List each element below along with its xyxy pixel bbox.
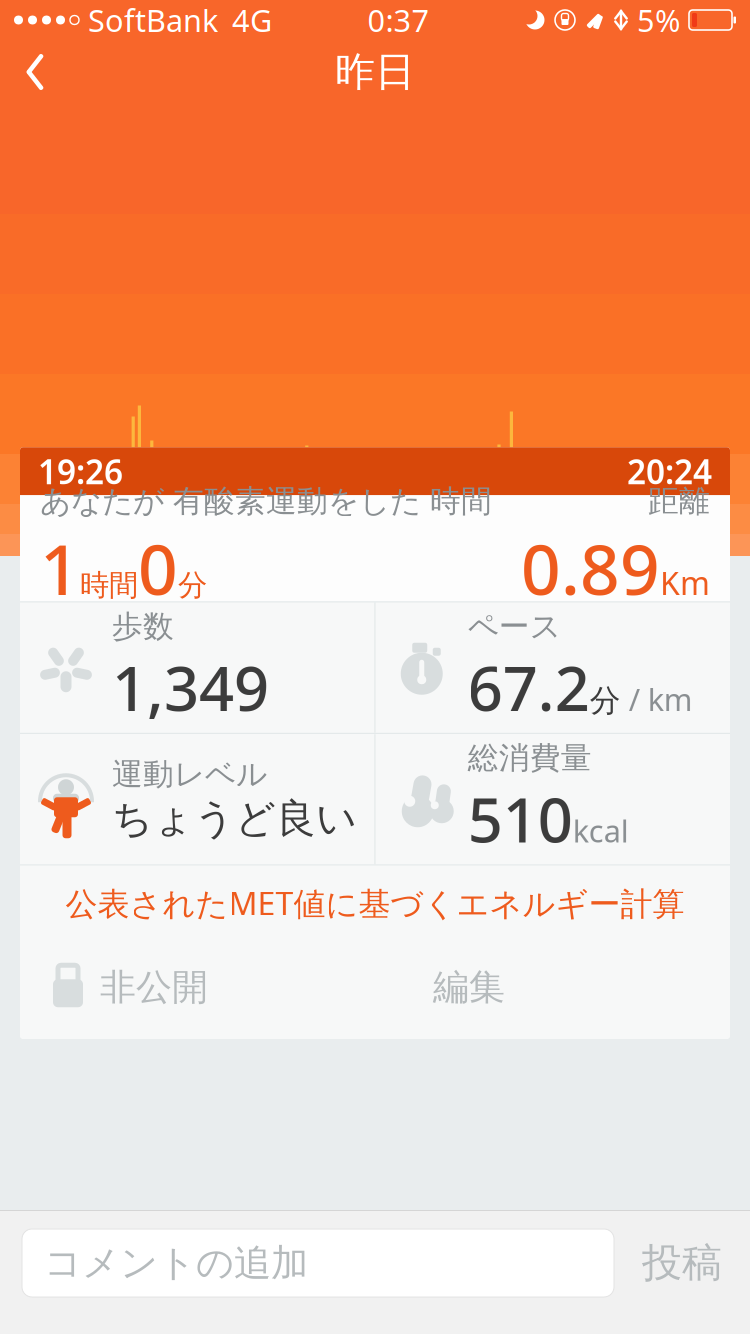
staticText: あなたが 有酸素運動をした 時間 [40, 482, 492, 520]
button[interactable]: 戻る [0, 40, 70, 104]
staticText: ちょうど良い [112, 794, 357, 843]
staticText: / km [621, 679, 693, 719]
staticText: kcal [573, 810, 629, 851]
staticText: 編集 [433, 965, 505, 1009]
button[interactable]: 非公開 [20, 954, 208, 1020]
staticText: 分 [590, 682, 621, 719]
staticText: 20:24 [627, 449, 712, 493]
staticText: 運動レベル [112, 755, 267, 793]
button[interactable]: 投稿 [614, 1229, 750, 1297]
staticText: Km [660, 561, 710, 604]
staticText: 距離 [648, 482, 710, 520]
staticText: 歩数 [112, 608, 174, 645]
staticText: 5% [637, 0, 680, 40]
staticText: 昨日 [335, 47, 415, 96]
staticText: 公表されたMET値に基づくエネルギー計算 [65, 882, 684, 924]
button[interactable]: 編集 [407, 955, 531, 1019]
staticText: 0 [138, 522, 178, 614]
staticText: 投稿 [642, 1238, 722, 1287]
staticText: 0.89 [521, 522, 660, 614]
button[interactable]: 公表されたMET値に基づくエネルギー計算 [20, 866, 730, 940]
staticText: 非公開 [100, 965, 208, 1009]
button[interactable]: コメントの追加 [22, 1229, 614, 1297]
staticText: 4G [232, 0, 272, 40]
staticText: ペース [468, 608, 561, 645]
staticText: 19:26 [38, 449, 123, 493]
staticText: 1,349 [112, 646, 269, 728]
staticText: 総消費量 [468, 739, 592, 777]
staticText: 1 [40, 522, 80, 614]
staticText: 0:37 [367, 0, 429, 40]
staticText: 分 [178, 567, 207, 603]
staticText: 時間 [80, 567, 138, 603]
staticText: コメントの追加 [44, 1240, 308, 1286]
staticText: 67.2 [468, 646, 590, 728]
staticText: 510 [468, 778, 573, 859]
staticText: SoftBank [88, 0, 218, 40]
